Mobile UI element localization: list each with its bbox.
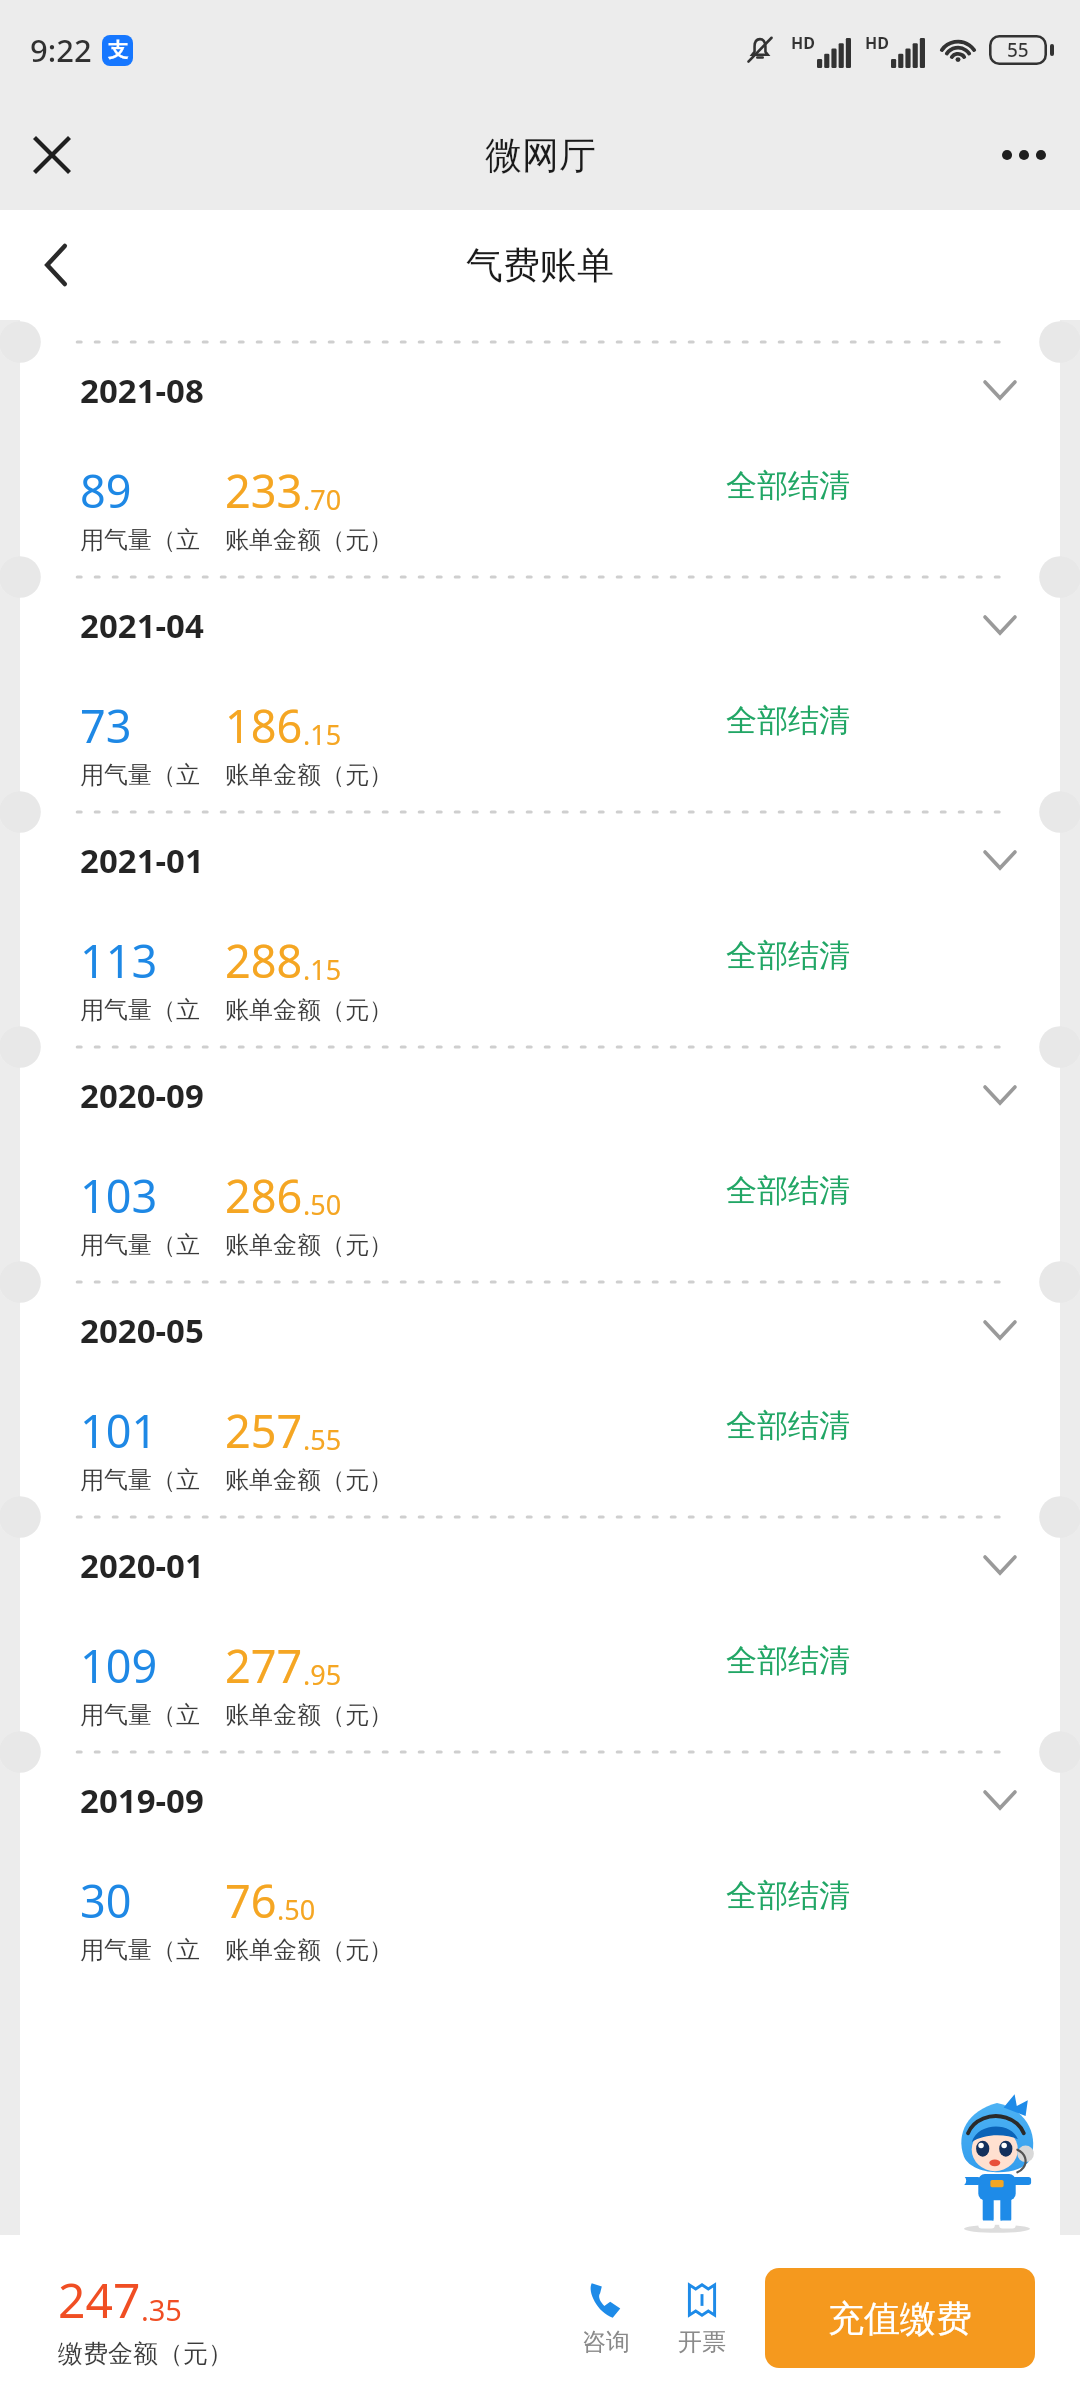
staticText: 2020-01 (80, 1543, 204, 1588)
staticText: 全部结清 (726, 701, 850, 740)
button[interactable]: 咨询 (561, 2279, 651, 2357)
staticText: HD (791, 32, 815, 54)
staticText: .95 (303, 1656, 342, 1693)
button[interactable]: 2020-05 (20, 1260, 1060, 1495)
staticText: .50 (277, 1891, 316, 1928)
staticText: .15 (303, 716, 342, 753)
staticText: 气费账单 (466, 242, 614, 289)
staticText: 全部结清 (726, 1876, 850, 1915)
staticText: 支 (108, 38, 128, 63)
button[interactable]: 开票 (657, 2279, 747, 2357)
staticText: .70 (303, 481, 342, 518)
button[interactable]: Expand (970, 1300, 1030, 1360)
staticText: 用气量（立方） (80, 995, 225, 1025)
staticText: 微网厅 (485, 132, 596, 179)
staticText: 用气量（立方） (80, 1230, 225, 1260)
button[interactable]: Expand (970, 595, 1030, 655)
staticText: 用气量（立方） (80, 1465, 225, 1495)
staticText: 全部结清 (726, 936, 850, 975)
staticText: .50 (303, 1186, 342, 1223)
button[interactable]: 充值缴费 (765, 2268, 1035, 2368)
staticText: 用气量（立方） (80, 1935, 225, 1965)
staticText: 账单金额（元） (225, 1935, 393, 1965)
staticText: 全部结清 (726, 1171, 850, 1210)
staticText: 9:22 (30, 29, 92, 71)
staticText: 账单金额（元） (225, 1230, 393, 1260)
staticText: 288 (225, 930, 303, 991)
staticText: .35 (141, 2290, 182, 2329)
button[interactable]: Expand (970, 1770, 1030, 1830)
button[interactable]: Expand (970, 830, 1030, 890)
button[interactable]: 2019-09 (20, 1730, 1060, 1965)
button[interactable]: 2021-08 (20, 320, 1060, 555)
button[interactable]: Expand (970, 1065, 1030, 1125)
staticText: 89 (80, 460, 132, 521)
button[interactable]: Back (20, 229, 92, 301)
staticText: 286 (225, 1165, 303, 1226)
button[interactable]: More options (986, 117, 1062, 193)
staticText: 全部结清 (726, 1406, 850, 1445)
staticText: 257 (225, 1400, 303, 1461)
staticText: 用气量（立方） (80, 525, 225, 555)
staticText: 247 (58, 2267, 141, 2332)
staticText: 2021-08 (80, 368, 204, 413)
staticText: 全部结清 (726, 1641, 850, 1680)
staticText: 109 (80, 1635, 158, 1696)
staticText: .15 (303, 951, 342, 988)
staticText: 用气量（立方） (80, 1700, 225, 1730)
staticText: 账单金额（元） (225, 760, 393, 790)
staticText: 103 (80, 1165, 158, 1226)
staticText: 55 (1007, 37, 1029, 63)
staticText: 咨询 (582, 2327, 630, 2357)
staticText: 2019-09 (80, 1778, 204, 1823)
staticText: 全部结清 (726, 466, 850, 505)
staticText: 101 (80, 1400, 158, 1461)
staticText: 30 (80, 1870, 132, 1931)
button[interactable]: 2021-01 (20, 790, 1060, 1025)
button[interactable]: Expand (970, 360, 1030, 420)
button[interactable]: 2020-09 (20, 1025, 1060, 1260)
staticText: HD (865, 32, 889, 54)
staticText: 缴费金额（元） (58, 2338, 233, 2369)
staticText: .55 (303, 1421, 342, 1458)
staticText: 76 (225, 1870, 277, 1931)
staticText: 2020-09 (80, 1073, 204, 1118)
button[interactable]: Expand (970, 1535, 1030, 1595)
staticText: 186 (225, 695, 303, 756)
button[interactable]: Close (14, 117, 90, 193)
staticText: 开票 (678, 2327, 726, 2357)
staticText: 113 (80, 930, 158, 991)
staticText: 账单金额（元） (225, 525, 393, 555)
staticText: 2020-05 (80, 1308, 204, 1353)
staticText: 2021-01 (80, 838, 204, 883)
button[interactable]: 2020-01 (20, 1495, 1060, 1730)
staticText: 账单金额（元） (225, 995, 393, 1025)
staticText: 2021-04 (80, 603, 204, 648)
staticText: 充值缴费 (828, 2296, 972, 2341)
staticText: 277 (225, 1635, 303, 1696)
button[interactable]: 2021-04 (20, 555, 1060, 790)
staticText: 73 (80, 695, 132, 756)
staticText: 账单金额（元） (225, 1700, 393, 1730)
staticText: 用气量（立方） (80, 760, 225, 790)
staticText: 账单金额（元） (225, 1465, 393, 1495)
staticText: 233 (225, 460, 303, 521)
